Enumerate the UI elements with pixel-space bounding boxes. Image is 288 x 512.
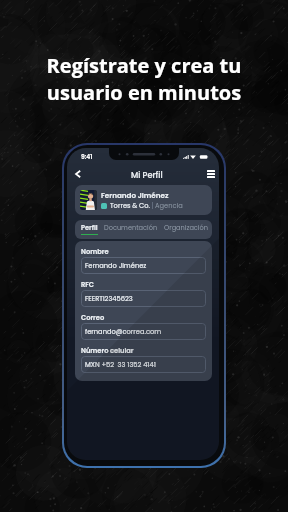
button[interactable]: Fernando Jiménez <box>81 257 206 274</box>
button[interactable]: Perfil <box>81 223 98 239</box>
button[interactable]: FEERTI2345623 <box>81 290 206 307</box>
staticText: Agencia <box>155 201 183 210</box>
button[interactable]: Fernando Jiménez <box>75 185 212 215</box>
staticText: Torres & Co. <box>110 201 150 210</box>
staticText: Perfil <box>81 223 98 232</box>
button[interactable]: Menu <box>204 167 218 181</box>
button[interactable]: MXN +52 33 1352 4141 <box>81 356 206 373</box>
staticText: Fernando Jiménez <box>85 261 147 270</box>
button[interactable]: Documentación <box>104 223 158 239</box>
staticText: FEERTI2345623 <box>85 294 133 303</box>
staticText: 9:41 <box>81 153 93 161</box>
staticText: Documentación <box>104 223 158 232</box>
button[interactable]: Back <box>71 167 85 181</box>
staticText: Regístrate y crea tu usuario en minutos <box>0 52 288 106</box>
staticText: Nombre <box>81 247 109 256</box>
button[interactable]: fernando@correa.com <box>81 323 206 340</box>
staticText: Mi Perfil <box>131 169 163 180</box>
staticText: Correo <box>81 313 105 322</box>
staticText: Fernando Jiménez <box>101 190 169 200</box>
staticText: fernando@correa.com <box>85 327 162 336</box>
staticText: Organización <box>164 223 208 232</box>
staticText: Número celular <box>81 346 134 355</box>
staticText: RFC <box>81 280 94 289</box>
staticText: MXN +52 33 1352 4141 <box>85 360 156 369</box>
button[interactable]: Organización <box>164 223 208 239</box>
